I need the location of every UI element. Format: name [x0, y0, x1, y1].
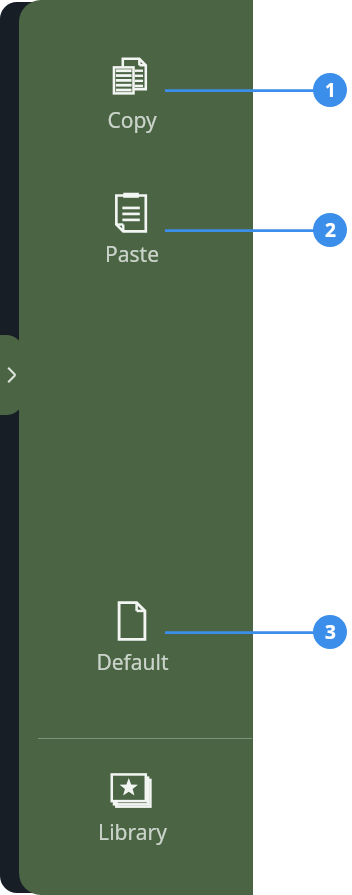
button[interactable]: Callout 2 — [313, 213, 347, 247]
staticText: 1 — [325, 77, 336, 103]
button[interactable]: Default — [72, 598, 192, 679]
button[interactable]: Callout 3 — [313, 615, 347, 649]
staticText: Paste — [105, 240, 159, 269]
button[interactable]: Copy — [72, 56, 192, 137]
button[interactable]: Callout 1 — [313, 73, 347, 107]
button[interactable]: Library — [72, 768, 192, 849]
staticText: 2 — [325, 217, 336, 243]
staticText: Default — [96, 648, 169, 677]
button[interactable]: Expand panel — [0, 335, 24, 415]
staticText: 3 — [325, 619, 336, 645]
button[interactable]: Paste — [72, 190, 192, 271]
staticText: Library — [98, 818, 167, 847]
staticText: Copy — [107, 106, 157, 135]
